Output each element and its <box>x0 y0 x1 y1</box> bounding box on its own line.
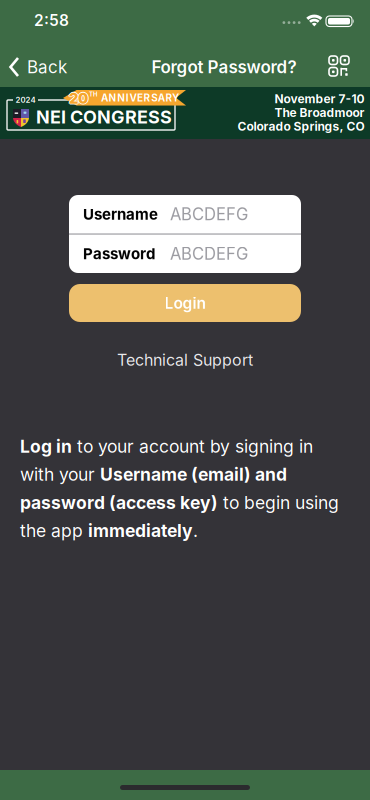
button[interactable]: Username <box>69 195 301 233</box>
staticText: NEI CONGRESS <box>36 106 172 128</box>
button[interactable]: Login <box>69 284 301 322</box>
staticText: 20 <box>70 90 89 107</box>
staticText: password (access key) to begin using <box>20 492 339 513</box>
staticText: Technical Support <box>117 350 253 370</box>
button[interactable]: Technical Support <box>0 350 370 370</box>
button[interactable]: Password <box>69 234 301 273</box>
staticText: 20 <box>69 89 88 106</box>
staticText: with your Username (email) and <box>20 464 287 485</box>
staticText: the app immediately. <box>20 520 198 541</box>
staticText: ABCDEFG <box>170 244 248 264</box>
button[interactable]: Back <box>0 47 71 87</box>
button[interactable]: Scan QR Code <box>324 51 354 81</box>
staticText: 20 <box>69 90 88 107</box>
staticText: 20 <box>69 90 88 108</box>
staticText: ANNIVERSARY <box>101 92 179 104</box>
staticText: 2:58 <box>34 11 69 30</box>
staticText: Forgot Password? <box>151 57 296 77</box>
staticText: TH <box>89 91 97 98</box>
staticText: Username <box>83 205 158 223</box>
staticText: 20 <box>68 90 87 107</box>
staticText: 2024 <box>15 95 35 105</box>
staticText: Login <box>164 294 205 312</box>
staticText: November 7-10 The Broadmoor Colorado Spr… <box>237 92 364 133</box>
staticText: Back <box>27 57 67 77</box>
staticText: ABCDEFG <box>170 204 248 224</box>
staticText: Log in to your account by signing in <box>20 436 313 457</box>
staticText: Password <box>83 245 155 263</box>
